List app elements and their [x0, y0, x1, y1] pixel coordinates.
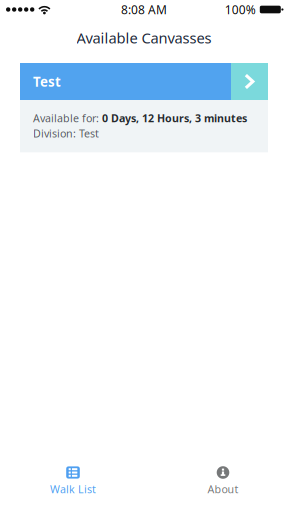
button[interactable]: Test [20, 63, 268, 100]
staticText: About [207, 482, 238, 496]
staticText: Walk List [50, 482, 96, 496]
staticText: Available Canvasses [76, 28, 211, 47]
staticText: 0 Days, 12 Hours, 3 minutes [102, 111, 247, 125]
staticText: Test [33, 73, 61, 90]
button[interactable]: Walk List [24, 464, 122, 512]
staticText: 8:08 AM [121, 1, 167, 17]
staticText: 100% [225, 1, 256, 17]
staticText: Division: Test [33, 126, 99, 140]
button[interactable]: About [174, 464, 272, 512]
staticText: Available for: [33, 111, 102, 125]
